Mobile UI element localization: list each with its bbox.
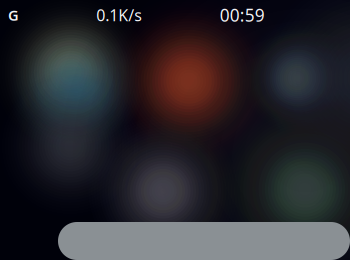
staticText: 00:59 — [220, 3, 265, 26]
staticText: 0.1K/s — [96, 4, 142, 26]
staticText: G — [8, 5, 19, 25]
